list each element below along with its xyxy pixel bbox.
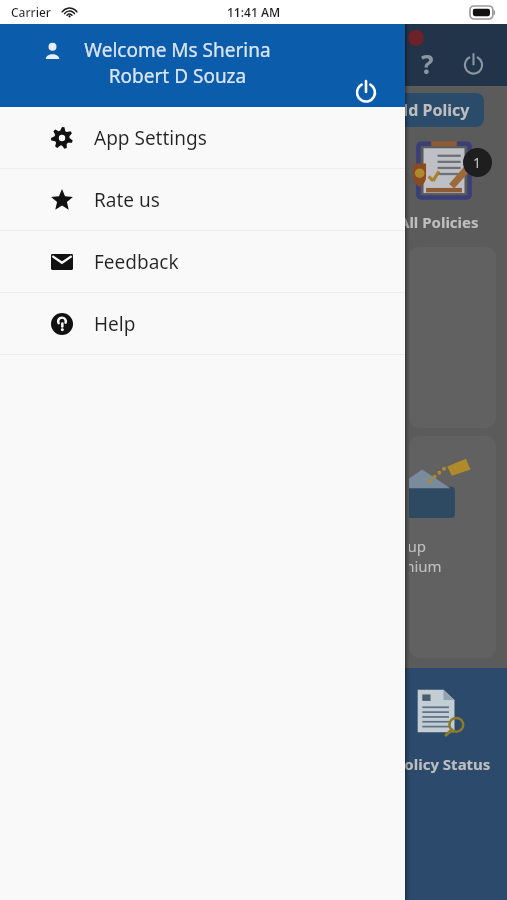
staticText: Rate us: [94, 187, 160, 213]
staticText: 1: [473, 153, 482, 172]
button[interactable]: Add Policy: [372, 93, 484, 127]
staticText: 11:41 AM: [227, 4, 281, 20]
staticText: All Policies: [399, 212, 479, 232]
staticText: Welcome Ms Sherina Robert D Souza: [70, 37, 285, 89]
button[interactable]: Help: [0, 293, 405, 354]
staticText: Help: [94, 311, 136, 337]
button[interactable]: Power: [458, 48, 488, 78]
button[interactable]: Welcome Ms Sherina Robert D Souza: [0, 24, 405, 107]
button[interactable]: Top-up Premium: [409, 436, 496, 658]
staticText: ?: [421, 46, 434, 81]
button[interactable]: App Settings: [0, 107, 405, 168]
staticText: Feedback: [94, 249, 179, 275]
button[interactable]: Logout: [349, 74, 383, 108]
button[interactable]: Feedback: [0, 231, 405, 292]
staticText: App Settings: [94, 125, 207, 151]
button[interactable]: Rate us: [0, 169, 405, 230]
staticText: Carrier: [11, 4, 51, 20]
staticText: Top-up Premium: [409, 536, 464, 576]
staticText: Policy Status: [395, 754, 491, 774]
staticText: Add Policy: [387, 99, 470, 121]
